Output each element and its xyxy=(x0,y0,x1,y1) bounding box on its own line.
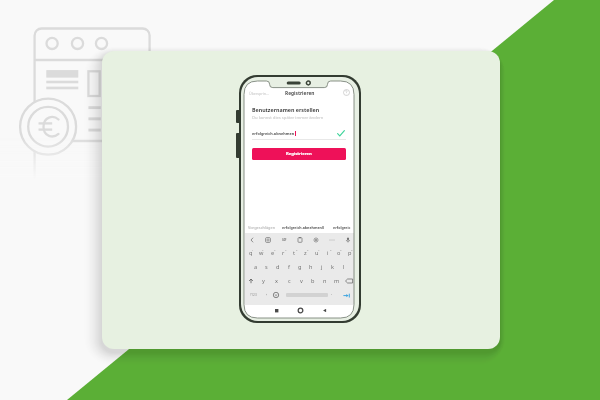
staticText: x xyxy=(275,277,278,285)
staticText: b xyxy=(311,277,315,285)
staticText: Übersprin... xyxy=(249,91,269,96)
button[interactable]: w xyxy=(256,246,267,260)
staticText: erfolgreic xyxy=(333,225,351,230)
button[interactable]: p xyxy=(344,246,354,260)
button[interactable]: Help xyxy=(343,89,350,96)
button[interactable]: c xyxy=(283,274,295,288)
button[interactable]: a xyxy=(251,260,261,274)
staticText: c xyxy=(288,277,291,285)
button[interactable]: o xyxy=(333,246,344,260)
staticText: Registrieren xyxy=(286,151,312,157)
button[interactable]: Settings xyxy=(311,235,321,245)
staticText: d xyxy=(276,263,280,271)
staticText: 4 xyxy=(285,248,287,251)
staticText: m xyxy=(334,277,340,285)
button[interactable]: j xyxy=(316,260,327,274)
staticText: f xyxy=(288,263,290,271)
staticText: 2 xyxy=(262,248,264,251)
button[interactable]: s xyxy=(261,260,272,274)
button[interactable]: n xyxy=(319,274,331,288)
button[interactable]: l xyxy=(338,260,349,274)
button[interactable]: Shift xyxy=(245,274,257,288)
staticText: 0 xyxy=(351,248,353,251)
staticText: p xyxy=(348,249,352,257)
staticText: Benutzernamen erstellen xyxy=(252,106,320,113)
staticText: erfolgreich.abnehmen0 xyxy=(282,225,324,230)
button[interactable]: Enter xyxy=(342,292,350,298)
button[interactable]: More options xyxy=(327,235,337,245)
button[interactable]: Registrieren xyxy=(252,148,346,160)
staticText: j xyxy=(321,263,323,271)
staticText: 1 xyxy=(252,248,254,251)
staticText: erfolgreich.abnehmen xyxy=(252,131,295,136)
button[interactable]: b xyxy=(307,274,319,288)
button[interactable]: t xyxy=(289,246,300,260)
button[interactable]: i xyxy=(322,246,333,260)
staticText: y xyxy=(262,277,265,285)
button[interactable]: k xyxy=(327,260,338,274)
staticText: 7 xyxy=(318,248,320,251)
button[interactable]: h xyxy=(305,260,316,274)
staticText: l xyxy=(343,263,345,271)
button[interactable]: Back xyxy=(319,305,330,316)
staticText: u xyxy=(315,249,319,257)
staticText: ?123 xyxy=(250,293,257,297)
button[interactable]: y xyxy=(257,274,270,288)
button[interactable]: d xyxy=(272,260,283,274)
staticText: 3 xyxy=(274,248,276,251)
staticText: s xyxy=(265,263,268,271)
staticText: Registrieren xyxy=(285,90,315,97)
button[interactable]: e xyxy=(267,246,278,260)
staticText: GIF xyxy=(282,238,287,242)
button[interactable]: Übersprin... xyxy=(248,90,270,97)
button[interactable]: f xyxy=(283,260,294,274)
staticText: i xyxy=(327,249,329,257)
staticText: z xyxy=(304,249,307,257)
button[interactable]: Backspace xyxy=(343,274,354,288)
button[interactable]: Symbols xyxy=(249,292,258,298)
staticText: t xyxy=(293,249,296,257)
button[interactable]: u xyxy=(311,246,322,260)
button[interactable]: Recents xyxy=(271,305,282,316)
staticText: 5 xyxy=(296,248,298,251)
staticText: 8 xyxy=(330,248,332,251)
button[interactable]: m xyxy=(331,274,343,288)
staticText: Vorgeschlägen xyxy=(248,225,276,230)
button[interactable]: z xyxy=(300,246,311,260)
staticText: o xyxy=(337,249,341,257)
staticText: Du kannst dies später immer ändern xyxy=(252,115,324,121)
button[interactable]: r xyxy=(278,246,289,260)
button[interactable]: Voice input xyxy=(343,235,353,245)
staticText: h xyxy=(309,263,313,271)
button[interactable]: Home xyxy=(295,305,306,316)
button[interactable]: Back xyxy=(247,235,257,245)
button[interactable]: x xyxy=(270,274,283,288)
button[interactable]: Clipboard xyxy=(295,235,305,245)
staticText: , xyxy=(266,290,268,296)
button[interactable]: v xyxy=(295,274,307,288)
staticText: q xyxy=(249,249,253,257)
staticText: 9 xyxy=(340,248,342,251)
staticText: n xyxy=(323,277,327,285)
staticText: w xyxy=(259,249,264,257)
staticText: . xyxy=(331,290,333,296)
button[interactable]: g xyxy=(294,260,305,274)
staticText: g xyxy=(298,263,302,271)
staticText: 6 xyxy=(307,248,309,251)
staticText: v xyxy=(300,277,303,285)
button[interactable]: GIF xyxy=(279,235,289,245)
staticText: r xyxy=(282,249,285,257)
button[interactable]: q xyxy=(245,246,256,260)
staticText: k xyxy=(331,263,334,271)
button[interactable]: Stickers xyxy=(263,235,273,245)
staticText: a xyxy=(254,263,258,271)
staticText: e xyxy=(271,249,275,257)
button[interactable]: Emoji xyxy=(273,292,279,298)
